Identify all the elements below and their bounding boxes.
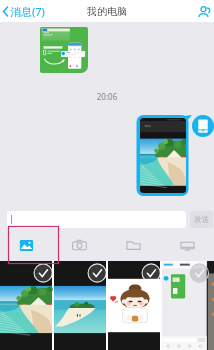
- button[interactable]: Shared card: [40, 27, 88, 73]
- button[interactable]: Screen share: [160, 230, 214, 260]
- button[interactable]: Photo 4: [162, 261, 214, 350]
- button[interactable]: Photo 1: [0, 261, 52, 350]
- button[interactable]: Photo 3: [108, 261, 160, 350]
- button[interactable]: Camera: [53, 230, 106, 260]
- button[interactable]: Photo message: [140, 118, 186, 193]
- button[interactable]: Chat info: [195, 3, 212, 20]
- staticText: 消息(7): [10, 4, 45, 19]
- button[interactable]: Photo 2: [54, 261, 106, 350]
- button[interactable]: Gallery: [0, 230, 53, 260]
- button[interactable]: Avatar: [192, 115, 214, 137]
- staticText: 发送: [194, 215, 209, 224]
- staticText: 我的电脑: [87, 5, 127, 18]
- button[interactable]: Message input: [7, 211, 186, 228]
- staticText: 20:06: [0, 91, 214, 102]
- button[interactable]: Files: [106, 230, 160, 260]
- button[interactable]: 发送: [190, 211, 213, 228]
- button[interactable]: 消息(7): [0, 2, 49, 21]
